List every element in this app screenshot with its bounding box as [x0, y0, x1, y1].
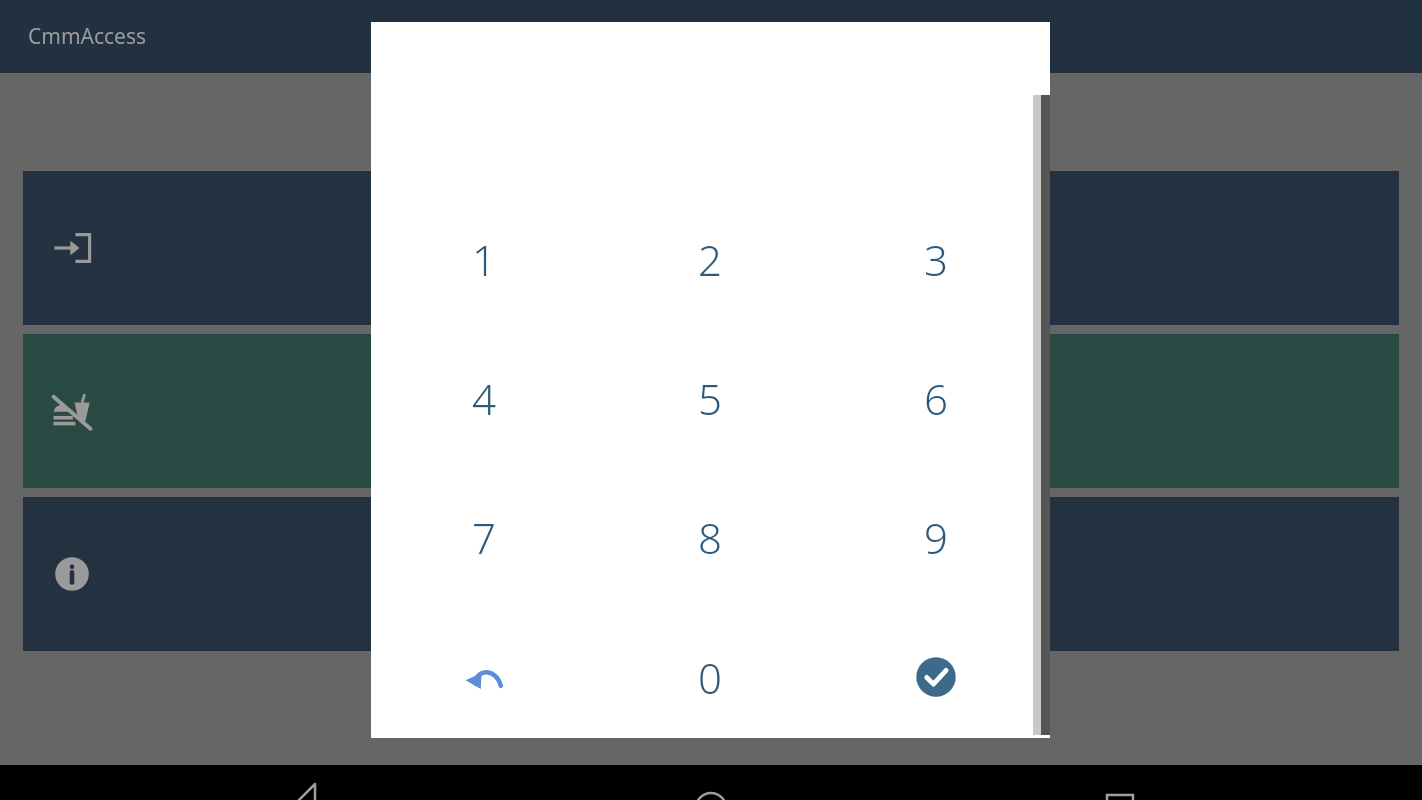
button[interactable]: 5 — [630, 343, 790, 453]
staticText: 1 — [472, 231, 496, 288]
button[interactable]: PRICHOD / ODCHOD — [23, 171, 1399, 325]
staticText: 7 — [472, 509, 496, 566]
button[interactable]: 7 — [404, 482, 564, 592]
staticText: 5 — [698, 370, 722, 427]
button[interactable]: 8 — [630, 482, 790, 592]
button[interactable]: Confirm — [856, 622, 1016, 732]
staticText: 3 — [924, 231, 948, 288]
button[interactable]: INFORMACIE O ZAMESTNANCOVI... — [23, 497, 1399, 651]
button[interactable]: 3 — [856, 204, 1016, 314]
staticText: 0 — [698, 649, 722, 706]
button[interactable]: 6 — [856, 343, 1016, 453]
staticText: 9 — [924, 509, 948, 566]
button[interactable]: 2 — [630, 204, 790, 314]
staticText: 2 — [698, 231, 722, 288]
button[interactable]: MALICA PRICHOD / MALICA ODHOD — [23, 334, 1399, 488]
staticText: PRICHOD / ODCHOD — [591, 232, 831, 265]
button[interactable]: 0 — [630, 622, 790, 732]
button[interactable]: 4 — [404, 343, 564, 453]
button[interactable]: 1 — [404, 204, 564, 314]
staticText: MALICA PRICHOD / MALICA ODHOD — [499, 395, 924, 428]
button[interactable]: 9 — [856, 482, 1016, 592]
staticText: 6 — [924, 370, 948, 427]
staticText: 4 — [472, 370, 496, 427]
staticText: CmmAccess — [28, 22, 147, 51]
button[interactable]: Undo — [404, 622, 564, 732]
staticText: 8 — [698, 509, 722, 566]
